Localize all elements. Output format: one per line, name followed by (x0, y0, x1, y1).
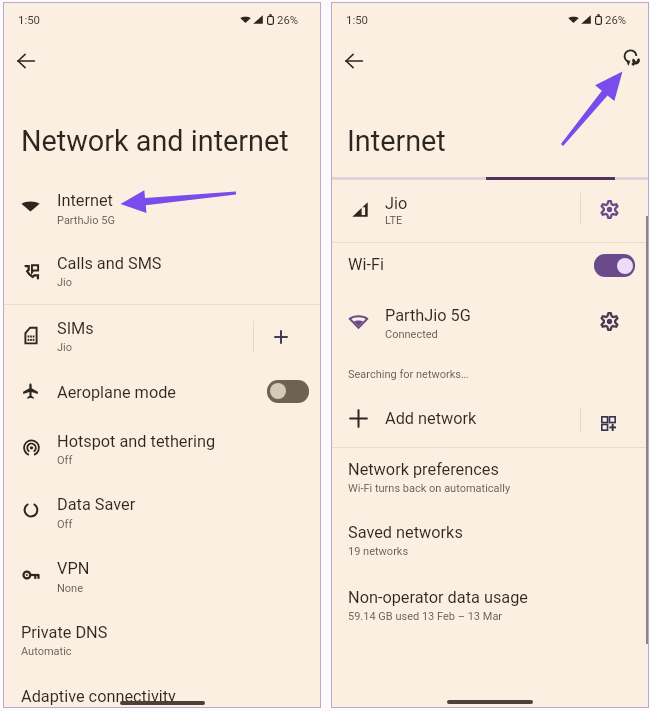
staticText: 26% (605, 13, 627, 26)
button[interactable]: Saved networks (331, 514, 649, 568)
staticText: Add network (385, 409, 477, 428)
staticText: Wi-Fi (348, 255, 384, 274)
button[interactable]: Adaptive connectivity (3, 678, 321, 708)
staticText: SIMs (57, 319, 94, 338)
button[interactable]: Wi-Fi switch (594, 254, 635, 277)
button[interactable]: ParthJio 5G (331, 296, 649, 350)
staticText: Calls and SMS (57, 254, 162, 273)
button[interactable]: Aeroplane mode switch (267, 380, 309, 403)
button[interactable]: Data Saver (3, 484, 321, 542)
staticText: VPN (57, 559, 90, 578)
staticText: 1:50 (18, 13, 40, 26)
button[interactable]: Reset network settings (617, 43, 645, 71)
button[interactable]: Calls and SMS (3, 242, 321, 300)
staticText: Internet (57, 191, 113, 210)
staticText: Jio (385, 194, 408, 213)
button[interactable]: Wi-Fi (331, 243, 649, 291)
button[interactable]: Private DNS (3, 614, 321, 666)
staticText: 59.14 GB used 13 Feb – 13 Mar (348, 610, 503, 623)
button[interactable]: Back (9, 44, 43, 78)
staticText: Saved networks (348, 523, 463, 542)
staticText: Aeroplane mode (57, 383, 177, 402)
staticText: Non-operator data usage (348, 588, 528, 607)
button[interactable]: Scan QR code (595, 410, 621, 436)
staticText: 19 networks (348, 545, 409, 558)
button[interactable]: Internet (3, 180, 321, 240)
staticText: ParthJio 5G (385, 306, 471, 325)
staticText: Wi-Fi turns back on automatically (348, 482, 511, 495)
staticText: Off (57, 454, 73, 467)
button[interactable]: Jio (331, 180, 649, 238)
staticText: Searching for networks… (348, 368, 469, 381)
staticText: Data Saver (57, 495, 136, 514)
button[interactable]: Network preferences (331, 450, 649, 506)
staticText: Automatic (21, 645, 72, 658)
button[interactable]: Non-operator data usage (331, 578, 649, 632)
staticText: Jio (57, 276, 73, 289)
staticText: Adaptive connectivity (21, 687, 176, 706)
button[interactable]: Add SIM (267, 323, 295, 351)
staticText: Off (57, 518, 73, 531)
staticText: ParthJio 5G (57, 214, 115, 227)
staticText: Network preferences (348, 460, 499, 479)
staticText: Network and internet (21, 124, 289, 158)
staticText: Internet (347, 124, 446, 158)
button[interactable]: Hotspot and tethering (3, 420, 321, 478)
button[interactable]: Network details (596, 308, 623, 335)
button[interactable]: Aeroplane mode (3, 368, 321, 416)
staticText: Connected (385, 328, 438, 341)
staticText: Private DNS (21, 623, 108, 642)
button[interactable]: Add network (331, 400, 649, 446)
staticText: Jio (57, 341, 73, 354)
button[interactable]: SIMs (3, 307, 321, 365)
button[interactable]: Mobile network settings (596, 196, 623, 223)
staticText: Hotspot and tethering (57, 432, 216, 451)
button[interactable]: VPN (3, 548, 321, 606)
staticText: 1:50 (346, 13, 368, 26)
staticText: None (57, 582, 84, 595)
button[interactable]: Back (337, 44, 371, 78)
staticText: LTE (385, 214, 403, 227)
staticText: 26% (277, 13, 299, 26)
